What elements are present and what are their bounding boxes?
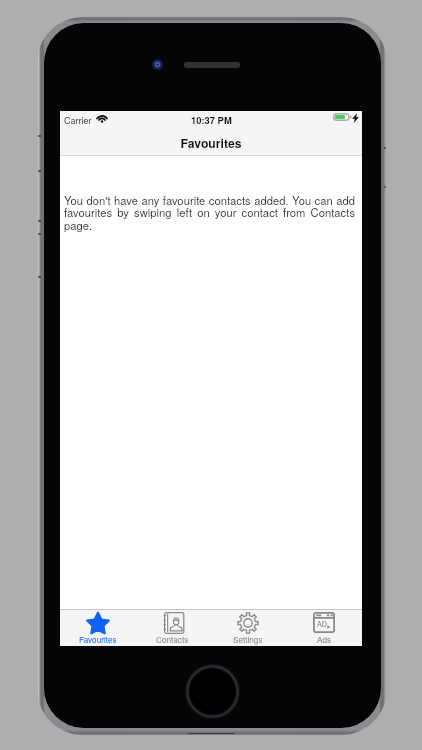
staticText: Carrier <box>64 114 92 127</box>
button[interactable]: Contacts <box>135 610 210 646</box>
other: Contacts <box>162 612 184 634</box>
button[interactable]: Settings <box>210 610 286 646</box>
other: Ads <box>313 612 335 633</box>
staticText: 10:37 PM <box>191 113 232 126</box>
staticText: Settings <box>233 634 263 646</box>
staticText: Contacts <box>156 634 189 646</box>
other: Settings <box>237 612 259 634</box>
staticText: Favourites <box>60 134 362 151</box>
staticText: Ads <box>317 634 332 646</box>
staticText: You don't have any favourite contacts ad… <box>64 192 355 234</box>
staticText: Favourites <box>79 634 117 646</box>
button[interactable]: Ads <box>286 610 362 646</box>
button[interactable]: Favourites <box>60 610 135 646</box>
staticText: AD <box>317 619 327 629</box>
other: Favourites <box>86 612 110 634</box>
